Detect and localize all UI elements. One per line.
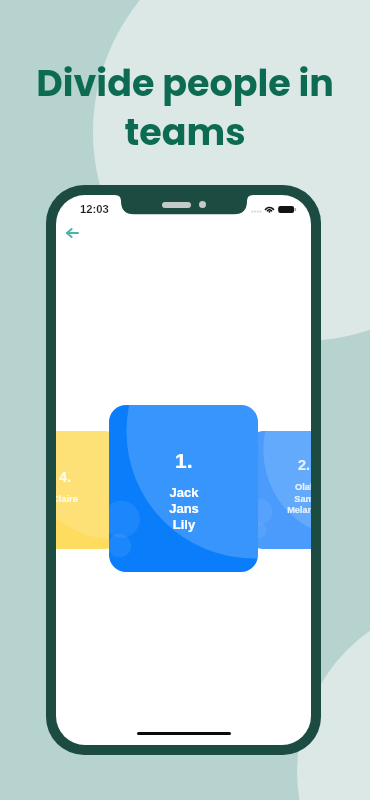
button[interactable]: 2. — [251, 431, 311, 549]
staticText: Claire — [56, 494, 78, 504]
staticText: 2. — [298, 457, 311, 473]
staticText: 12:03 — [80, 203, 109, 216]
staticText: Olaf Sam Melanie — [287, 482, 311, 515]
staticText: Jack Jans Lily — [169, 485, 199, 531]
staticText: 1. — [175, 449, 193, 472]
button[interactable]: 1. — [109, 405, 258, 572]
staticText: 4. — [59, 469, 72, 485]
button[interactable]: Back — [58, 219, 86, 247]
button[interactable]: 4. — [56, 431, 117, 549]
staticText: Divide people in teams — [36, 58, 334, 158]
